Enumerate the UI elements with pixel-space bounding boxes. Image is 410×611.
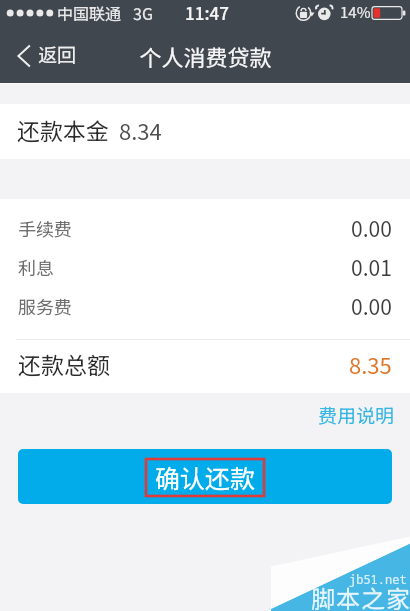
staticText: 8.35 <box>349 348 392 380</box>
button[interactable]: 费用说明 <box>318 399 395 431</box>
button[interactable]: 返回 Back <box>13 35 87 75</box>
staticText: 还款总额 <box>18 347 110 380</box>
staticText: 11:47 <box>185 0 229 25</box>
staticText: 3G <box>133 1 153 24</box>
staticText: 脚本之家 <box>311 580 410 611</box>
staticText: 服务费 <box>18 293 72 319</box>
staticText: 还款本金 <box>17 113 109 146</box>
staticText: 0.00 <box>351 291 392 321</box>
staticText: 利息 <box>18 254 54 280</box>
staticText: 返回 <box>38 40 77 68</box>
staticText: 中国联通 <box>57 1 122 24</box>
staticText: 确认还款 <box>155 459 256 495</box>
staticText: 0.00 <box>351 213 392 243</box>
button[interactable]: 确认还款 <box>18 449 392 504</box>
staticText: 手续费 <box>18 215 72 241</box>
staticText: 0.01 <box>351 252 392 282</box>
staticText: jb51.net <box>349 571 407 587</box>
staticText: 费用说明 <box>318 401 395 429</box>
staticText: 14% <box>340 1 371 23</box>
staticText: 8.34 <box>119 114 162 146</box>
staticText: 个人消费贷款 <box>139 40 272 72</box>
